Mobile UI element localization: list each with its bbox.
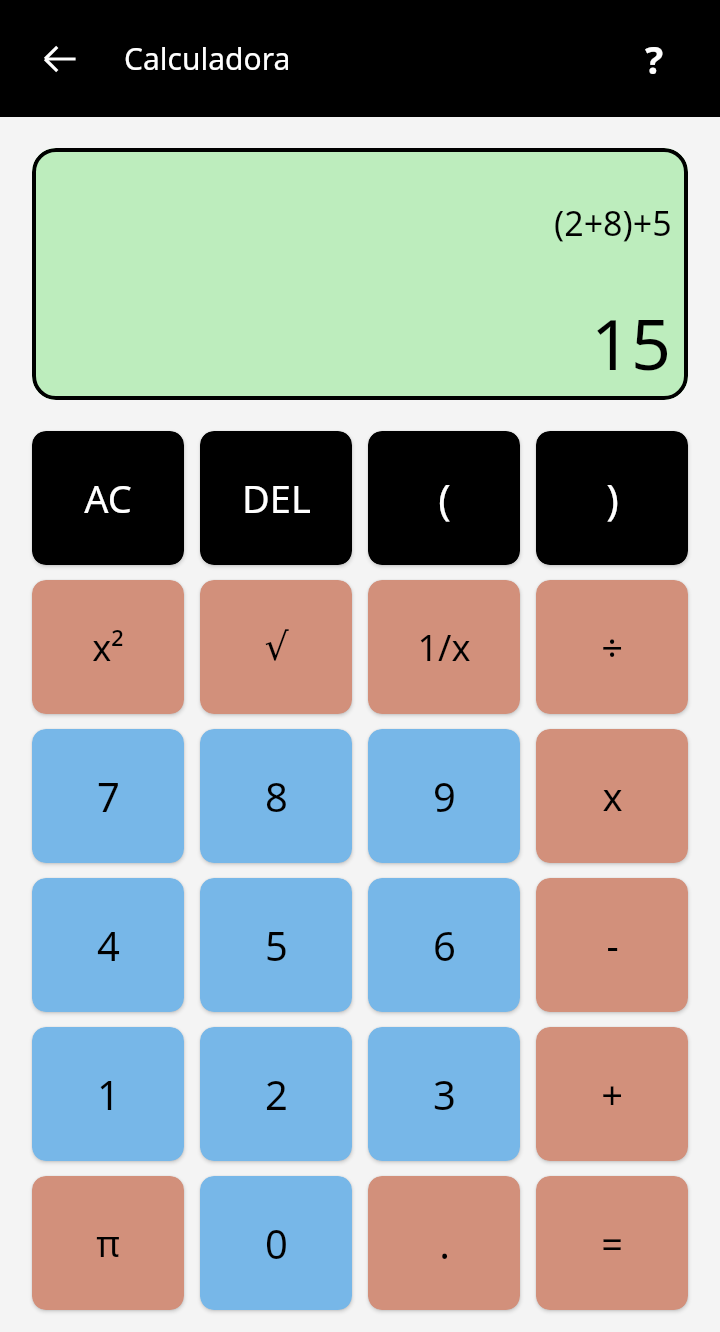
button[interactable]: 3 [368,1027,520,1161]
button[interactable]: = [536,1176,688,1310]
staticText: (2+8)+5 [554,200,672,246]
button[interactable]: 1 [32,1027,184,1161]
staticText: 4 [97,918,120,972]
staticText: DEL [242,472,311,524]
button[interactable]: - [536,878,688,1012]
button[interactable]: 1/x [368,580,520,714]
staticText: AC [84,472,132,524]
staticText: 5 [265,918,288,972]
button[interactable]: ) [536,431,688,565]
button[interactable]: 0 [200,1176,352,1310]
staticText: √ [264,625,289,669]
staticText: 1/x [417,623,471,672]
staticText: 1 [97,1067,120,1121]
staticText: x [602,770,623,822]
button[interactable]: x [536,729,688,863]
staticText: 2 [265,1067,288,1121]
button[interactable]: 4 [32,878,184,1012]
button[interactable]: π [32,1176,184,1310]
button[interactable]: 6 [368,878,520,1012]
staticText: ) [606,470,619,527]
staticText: 3 [433,1067,456,1121]
button[interactable]: DEL [200,431,352,565]
button[interactable]: AC [32,431,184,565]
button[interactable]: Back [30,29,90,89]
staticText: 9 [433,769,456,823]
staticText: ( [438,470,451,527]
button[interactable]: x² [32,580,184,714]
button[interactable]: ÷ [536,580,688,714]
staticText: - [606,919,619,971]
staticText: 15 [591,295,672,390]
staticText: ÷ [601,621,623,673]
staticText: 6 [433,918,456,972]
staticText: 7 [97,769,120,823]
button[interactable]: 7 [32,729,184,863]
button[interactable]: 8 [200,729,352,863]
staticText: . [439,1216,450,1270]
staticText: = [601,1217,623,1269]
button[interactable]: Help [624,29,684,89]
button[interactable]: + [536,1027,688,1161]
button[interactable]: 5 [200,878,352,1012]
staticText: + [601,1068,623,1120]
button[interactable]: √ [200,580,352,714]
staticText: x² [92,623,124,672]
staticText: 8 [265,769,288,823]
button[interactable]: 9 [368,729,520,863]
button[interactable]: ( [368,431,520,565]
button[interactable]: . [368,1176,520,1310]
button[interactable]: 2 [200,1027,352,1161]
staticText: ? [645,33,664,85]
staticText: 0 [265,1216,288,1270]
staticText: Calculadora [124,38,291,79]
staticText: π [96,1219,120,1268]
